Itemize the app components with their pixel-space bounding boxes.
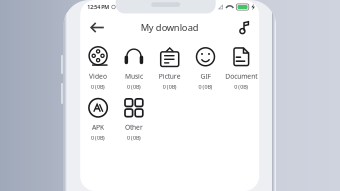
staticText: Music	[125, 72, 143, 81]
staticText: 0 (0B)	[127, 134, 141, 141]
staticText: 0 (0B)	[127, 83, 141, 90]
staticText: 0 (0B)	[234, 83, 248, 90]
staticText: Other	[125, 123, 143, 132]
staticText: Document	[225, 72, 257, 81]
staticText: My download	[141, 21, 199, 34]
staticText: 0 (0B)	[163, 83, 177, 90]
staticText: Video	[89, 72, 107, 81]
staticText: 0 (0B)	[198, 83, 212, 90]
button[interactable]: Back	[85, 17, 110, 38]
button[interactable]: Picture	[152, 45, 188, 91]
staticText: 0 (0B)	[91, 83, 105, 90]
button[interactable]: Other	[116, 96, 152, 142]
staticText: 12:54 PM	[87, 3, 109, 11]
staticText: 0 (0B)	[91, 134, 105, 141]
staticText: APK	[92, 123, 104, 132]
button[interactable]: APK	[80, 96, 116, 142]
button[interactable]: Music	[235, 16, 254, 38]
button[interactable]: Document	[223, 45, 259, 91]
button[interactable]: GIF	[188, 45, 223, 91]
button[interactable]: Video	[80, 45, 116, 91]
button[interactable]: Music	[116, 45, 152, 91]
staticText: GIF	[200, 72, 210, 81]
staticText: Picture	[159, 72, 181, 81]
